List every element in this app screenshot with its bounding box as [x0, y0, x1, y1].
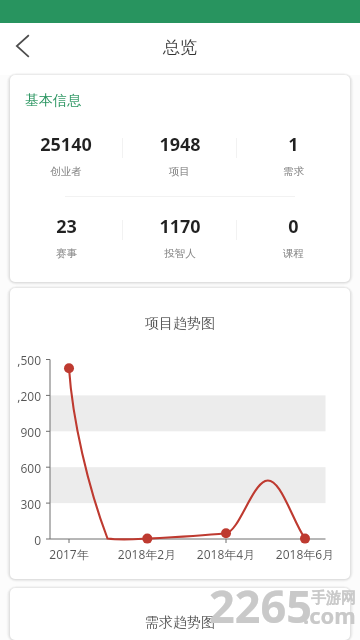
staticText: 项目	[169, 165, 190, 178]
staticText: ,200	[10, 388, 41, 404]
staticText: 2018年2月	[112, 546, 182, 562]
button[interactable]: 25140	[10, 132, 122, 178]
staticText: 手游网	[311, 589, 356, 608]
staticText: 2265	[209, 575, 312, 636]
button[interactable]: 0	[237, 214, 350, 260]
staticText: 需求趋势图	[145, 614, 215, 632]
button[interactable]: 23	[10, 214, 122, 260]
staticText: 300	[10, 496, 41, 512]
staticText: 23	[56, 214, 77, 239]
staticText: 1	[288, 132, 299, 157]
staticText: 0	[10, 532, 41, 548]
staticText: 900	[10, 424, 41, 440]
button[interactable]: 1	[237, 132, 350, 178]
staticText: 2017年	[34, 546, 104, 562]
staticText: 2018年6月	[270, 546, 340, 562]
staticText: .com	[303, 600, 356, 630]
button[interactable]: 1170	[123, 214, 236, 260]
staticText: 赛事	[56, 247, 77, 260]
staticText: 基本信息	[25, 92, 81, 110]
staticText: 创业者	[50, 165, 82, 178]
staticText: 1948	[159, 132, 201, 157]
staticText: 课程	[283, 247, 304, 260]
staticText: 2018年4月	[191, 546, 261, 562]
staticText: 总览	[163, 37, 197, 58]
staticText: 需求	[283, 165, 304, 178]
button[interactable]: Back	[0, 27, 44, 71]
staticText: 600	[10, 460, 41, 476]
staticText: 投智人	[164, 247, 196, 260]
staticText: ,500	[10, 352, 41, 368]
staticText: 项目趋势图	[145, 315, 215, 333]
staticText: 25140	[40, 132, 92, 157]
staticText: 0	[288, 214, 299, 239]
staticText: 1170	[159, 214, 201, 239]
button[interactable]: 1948	[123, 132, 236, 178]
